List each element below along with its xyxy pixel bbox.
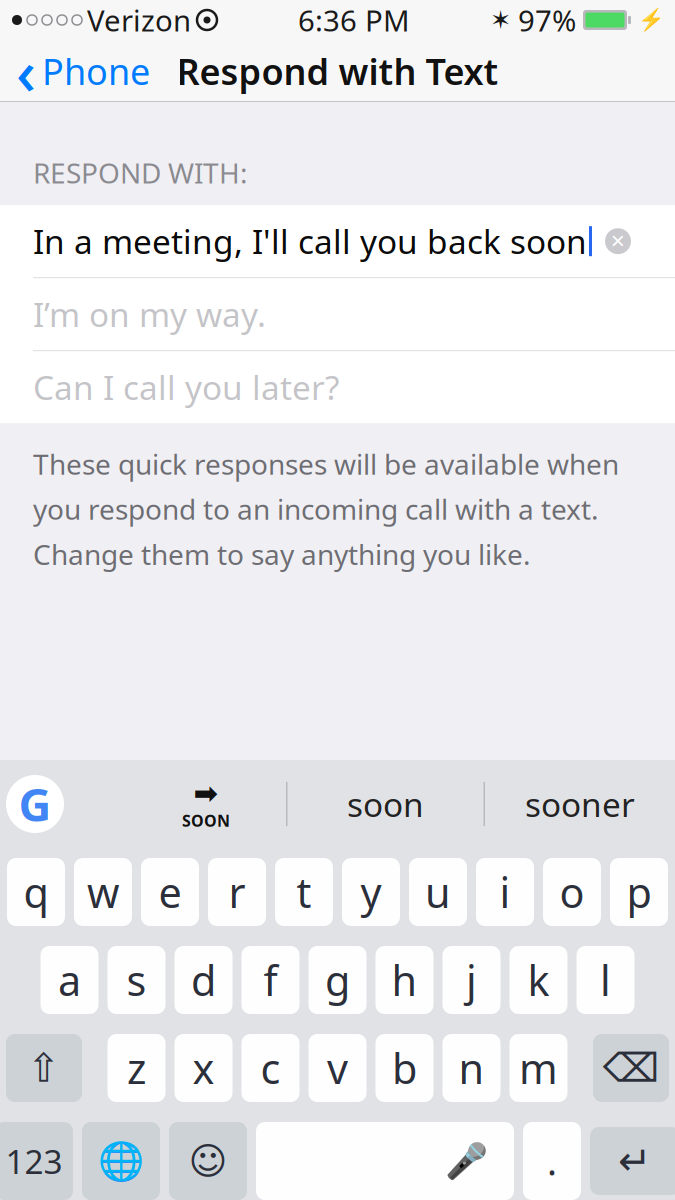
staticText: y xyxy=(360,865,381,919)
staticText: t xyxy=(296,865,311,919)
staticText: sooner xyxy=(525,782,635,826)
staticText: SOON xyxy=(182,810,230,831)
staticText: 97% xyxy=(518,0,576,39)
button[interactable]: n xyxy=(442,1034,500,1102)
button[interactable]: m xyxy=(509,1034,567,1102)
staticText: d xyxy=(191,953,216,1007)
button[interactable]: Next keyboard xyxy=(82,1122,160,1200)
button[interactable]: 123 xyxy=(0,1122,73,1200)
staticText: o xyxy=(559,865,584,919)
staticText: ‹ xyxy=(16,30,36,112)
button[interactable]: Space xyxy=(256,1122,514,1200)
staticText: i xyxy=(499,865,510,919)
button[interactable]: r xyxy=(208,858,266,926)
button[interactable]: Return xyxy=(590,1127,675,1195)
staticText: l xyxy=(600,953,611,1007)
staticText: ☺ xyxy=(188,1140,227,1182)
staticText: RESPOND WITH: xyxy=(33,154,248,191)
button[interactable]: soon xyxy=(287,774,483,834)
staticText: 6:36 PM xyxy=(298,0,410,39)
staticText: Verizon xyxy=(87,0,191,39)
button[interactable]: i xyxy=(476,858,534,926)
staticText: In a meeting, I'll call you back soon xyxy=(33,219,587,263)
button[interactable]: sooner xyxy=(485,774,675,834)
button[interactable]: Predicted word soon xyxy=(166,774,246,834)
button[interactable]: ‹ xyxy=(0,42,166,100)
button[interactable]: Emoji xyxy=(169,1122,247,1200)
button[interactable]: h xyxy=(375,946,433,1014)
button[interactable]: w xyxy=(74,858,132,926)
staticText: ✶ xyxy=(490,6,511,34)
button[interactable]: z xyxy=(107,1034,165,1102)
staticText: ➡ xyxy=(193,777,218,810)
staticText: z xyxy=(127,1041,146,1095)
button[interactable]: Delete xyxy=(593,1034,669,1102)
button[interactable]: In a meeting, I'll call you back soon xyxy=(0,205,675,277)
button[interactable]: l xyxy=(576,946,634,1014)
staticText: Respond with Text xyxy=(176,47,498,95)
staticText: 123 xyxy=(5,1139,62,1183)
staticText: soon xyxy=(347,782,424,826)
staticText: j xyxy=(466,953,477,1007)
staticText: G xyxy=(18,774,51,834)
staticText: p xyxy=(626,865,651,919)
button[interactable]: Shift xyxy=(6,1034,82,1102)
button[interactable]: j xyxy=(442,946,500,1014)
button[interactable]: I’m on my way. xyxy=(0,278,675,350)
staticText: Phone xyxy=(42,47,150,95)
button[interactable]: g xyxy=(308,946,366,1014)
button[interactable]: e xyxy=(141,858,199,926)
button[interactable]: f xyxy=(241,946,299,1014)
button[interactable]: x xyxy=(174,1034,232,1102)
button[interactable]: a xyxy=(40,946,98,1014)
staticText: h xyxy=(391,953,417,1007)
button[interactable]: q xyxy=(7,858,65,926)
staticText: a xyxy=(58,953,81,1007)
staticText: Can I call you later? xyxy=(33,365,339,409)
staticText: ⌫ xyxy=(602,1045,659,1091)
button[interactable]: y xyxy=(342,858,400,926)
staticText: v xyxy=(327,1041,348,1095)
button[interactable]: k xyxy=(509,946,567,1014)
staticText: q xyxy=(23,865,48,919)
staticText: 🌐 xyxy=(98,1140,144,1182)
staticText: b xyxy=(392,1041,417,1095)
staticText: x xyxy=(192,1041,214,1095)
staticText: w xyxy=(87,865,119,919)
button[interactable]: o xyxy=(543,858,601,926)
button[interactable]: v xyxy=(308,1034,366,1102)
button[interactable]: Can I call you later? xyxy=(0,351,675,423)
staticText: ↵ xyxy=(618,1138,652,1184)
staticText: r xyxy=(228,865,245,919)
staticText: ⚡ xyxy=(638,8,665,32)
staticText: k xyxy=(527,953,549,1007)
staticText: These quick responses will be available … xyxy=(33,445,619,573)
button[interactable]: . xyxy=(523,1122,581,1200)
button[interactable]: Google search xyxy=(0,769,70,839)
button[interactable]: u xyxy=(409,858,467,926)
staticText: 🎤 xyxy=(445,1141,488,1181)
button[interactable]: d xyxy=(174,946,232,1014)
button[interactable]: b xyxy=(375,1034,433,1102)
staticText: e xyxy=(158,865,181,919)
staticText: g xyxy=(325,953,350,1007)
staticText: ✕ xyxy=(610,231,626,252)
staticText: u xyxy=(425,865,451,919)
staticText: n xyxy=(458,1041,484,1095)
staticText: I’m on my way. xyxy=(33,292,266,336)
staticText: . xyxy=(547,1136,557,1186)
button[interactable]: c xyxy=(241,1034,299,1102)
staticText: c xyxy=(260,1041,280,1095)
staticText: m xyxy=(519,1041,558,1095)
staticText: s xyxy=(126,953,146,1007)
button[interactable]: t xyxy=(275,858,333,926)
staticText: f xyxy=(263,953,277,1007)
button[interactable]: s xyxy=(107,946,165,1014)
button[interactable]: p xyxy=(610,858,668,926)
staticText: ⇧ xyxy=(27,1045,61,1091)
